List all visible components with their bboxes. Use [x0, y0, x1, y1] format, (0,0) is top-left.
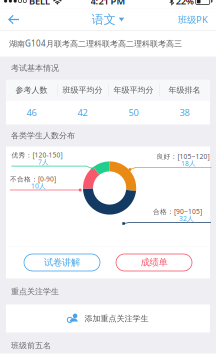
staticText: 4:21 PM	[90, 0, 125, 7]
staticText: BELL	[29, 0, 50, 7]
staticText: 语文	[92, 12, 116, 27]
staticText: 32人	[179, 214, 194, 223]
button[interactable]: 成绩单	[116, 254, 192, 271]
staticText: 重点关注学生	[11, 287, 59, 296]
button[interactable]: 试卷讲解	[24, 254, 100, 271]
staticText: 7人	[38, 158, 49, 166]
button[interactable]: 班级PK	[172, 9, 214, 30]
staticText: 10人	[31, 182, 46, 190]
button[interactable]: 添加重点关注学生	[6, 304, 210, 332]
staticText: 22%	[176, 0, 194, 7]
staticText: 年级平均分	[113, 85, 153, 95]
staticText: 合格：[90~105]	[153, 207, 202, 216]
staticText: 成绩单	[140, 257, 167, 268]
staticText: 良好：[105~120]	[157, 152, 210, 161]
staticText: 18人	[181, 159, 196, 168]
button[interactable]: Back	[2, 10, 26, 29]
staticText: 班级PK	[178, 13, 208, 26]
staticText: 不合格：[0-90]	[10, 175, 56, 183]
staticText: 参考人数	[15, 85, 47, 95]
staticText: 优秀：[120-150]	[11, 151, 62, 159]
staticText: 50	[128, 106, 138, 119]
staticText: 添加重点关注学生	[84, 314, 148, 323]
staticText: 考试基本情况	[11, 63, 59, 73]
staticText: 湖南G104月联考高二理科联考高二理科联考高三	[9, 38, 182, 49]
staticText: 班级前五名	[11, 341, 51, 350]
staticText: 各类学生人数分布	[11, 131, 75, 140]
staticText: 班级平均分	[62, 85, 102, 95]
staticText: 试卷讲解	[44, 257, 80, 268]
staticText: 年级排名	[168, 85, 200, 95]
staticText: 46	[26, 106, 36, 119]
staticText: 42	[77, 106, 87, 119]
staticText: 38	[179, 106, 189, 119]
button[interactable]: 语文	[86, 9, 130, 30]
